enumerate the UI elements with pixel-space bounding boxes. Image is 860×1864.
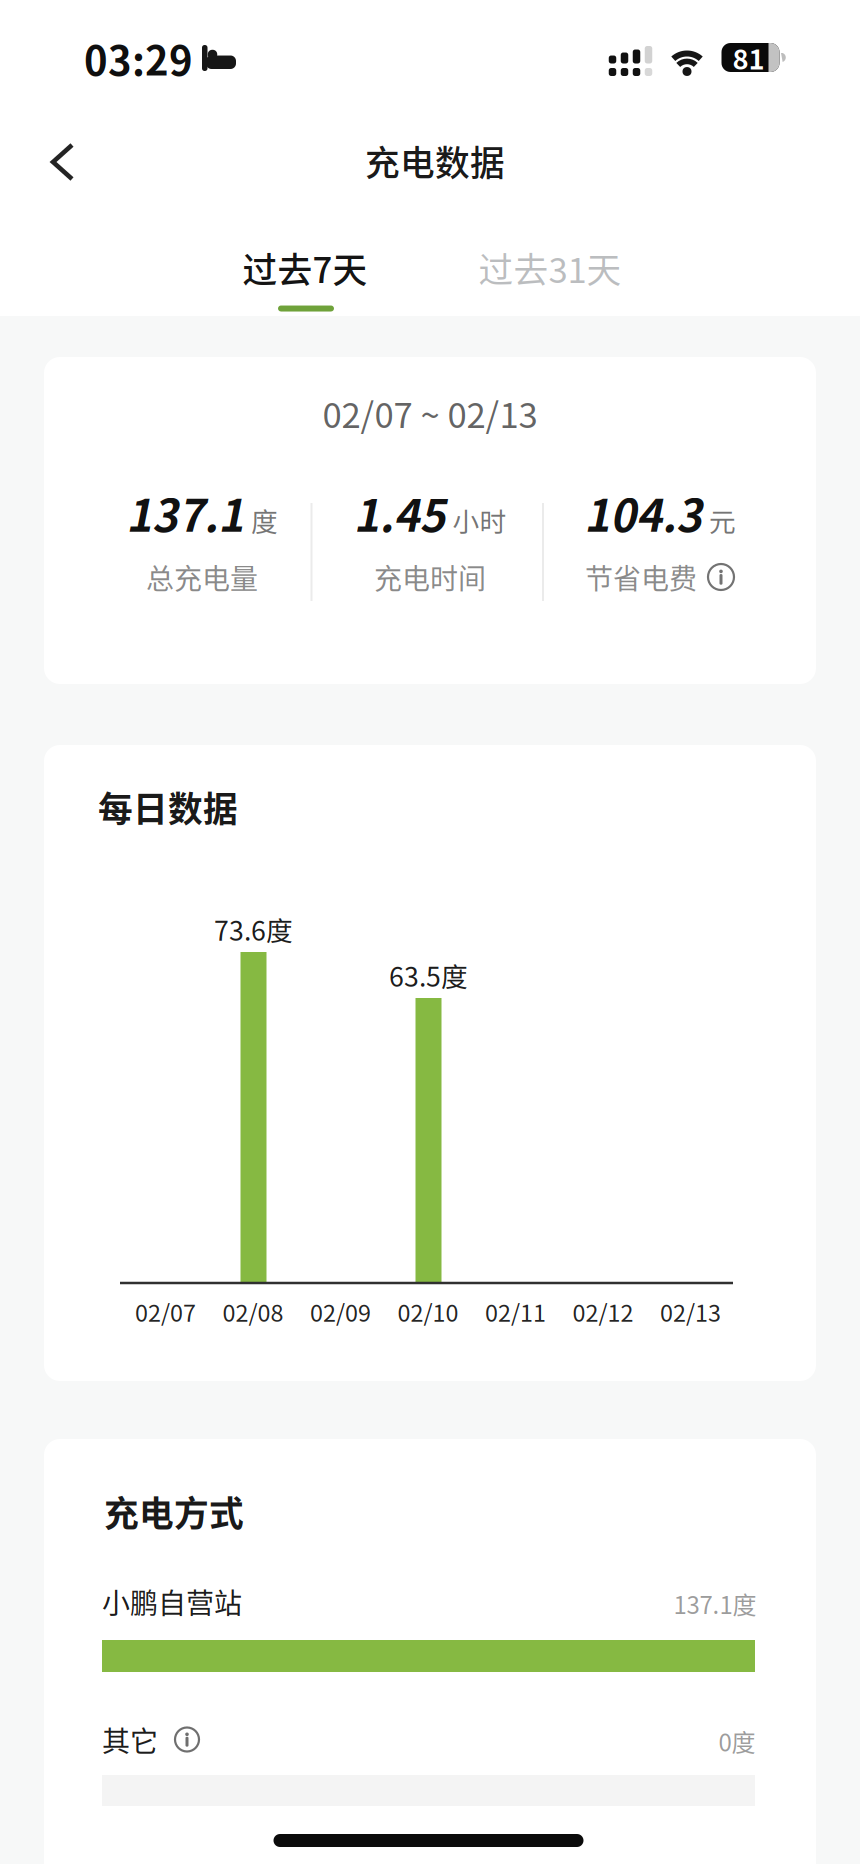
staticText: 充电方式 (104, 1486, 244, 1537)
staticText: 小时 (452, 501, 506, 539)
staticText: 02/09 (310, 1295, 371, 1328)
button[interactable]: 过去31天 (455, 229, 645, 321)
staticText: 137.1度 (673, 1586, 756, 1621)
staticText: 过去31天 (478, 243, 621, 293)
button[interactable]: 过去7天 (215, 229, 395, 321)
staticText: 03:29 (84, 29, 193, 87)
staticText: 63.5度 (389, 956, 468, 994)
staticText: 过去7天 (242, 243, 367, 293)
staticText: 0度 (718, 1724, 755, 1758)
staticText: 每日数据 (98, 782, 238, 832)
staticText: 度 (251, 501, 278, 539)
staticText: 充电时间 (374, 557, 486, 597)
staticText: 节省电费 (585, 557, 697, 597)
staticText: 1.45 (353, 481, 445, 544)
staticText: 73.6度 (214, 910, 293, 948)
staticText: 02/08 (222, 1295, 283, 1328)
staticText: 充电数据 (365, 136, 505, 186)
staticText: 02/07 ~ 02/13 (322, 388, 537, 438)
button[interactable]: About saved cost (707, 563, 735, 591)
staticText: 02/07 (135, 1295, 196, 1328)
button[interactable]: About other charging (174, 1726, 200, 1752)
staticText: 总充电量 (146, 557, 258, 597)
staticText: 137.1 (126, 481, 244, 544)
staticText: 81 (732, 38, 764, 77)
staticText: 104.3 (584, 481, 702, 544)
staticText: 其它 (102, 1719, 158, 1760)
staticText: 元 (709, 501, 736, 539)
button[interactable]: Back (30, 130, 94, 194)
staticText: 小鹏自营站 (102, 1581, 242, 1622)
staticText: 02/12 (572, 1295, 633, 1328)
staticText: 02/11 (485, 1295, 546, 1328)
staticText: 02/13 (660, 1295, 721, 1328)
staticText: 02/10 (397, 1295, 458, 1328)
